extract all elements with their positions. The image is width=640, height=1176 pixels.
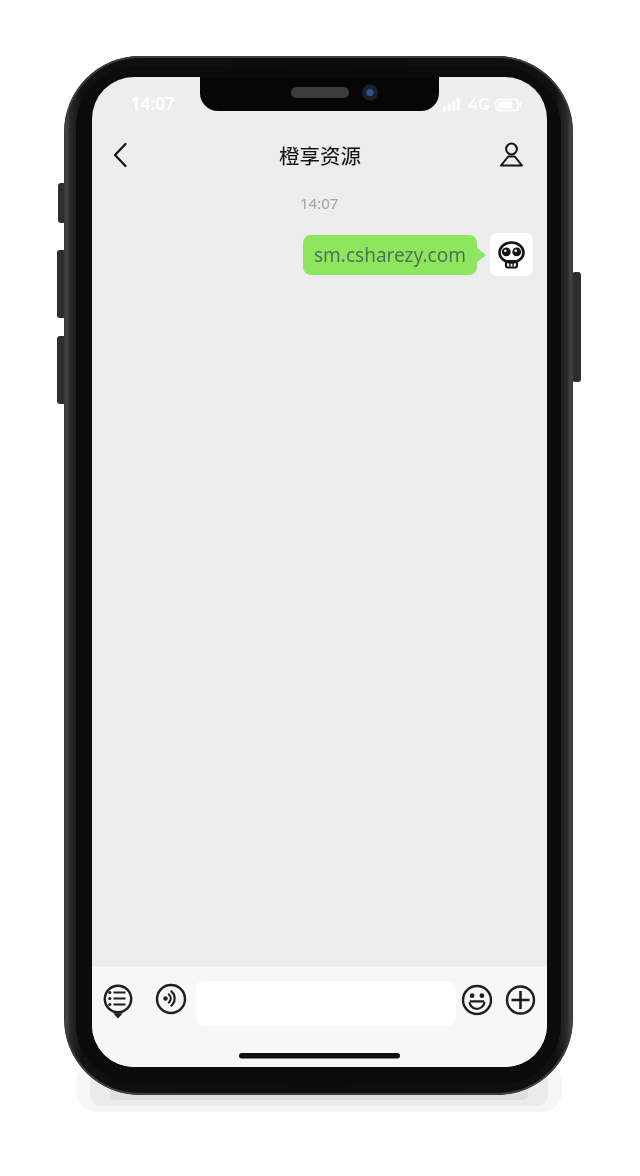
staticText: 橙享资源 xyxy=(279,140,361,170)
staticText: 14:07 xyxy=(131,92,175,115)
button[interactable] xyxy=(494,137,532,171)
button[interactable] xyxy=(503,983,539,1019)
button[interactable] xyxy=(152,984,188,1020)
button[interactable] xyxy=(106,139,136,171)
staticText: sm.csharezy.com xyxy=(314,242,466,268)
button[interactable] xyxy=(459,983,495,1019)
button[interactable] xyxy=(490,233,533,276)
button[interactable]: sm.csharezy.com xyxy=(303,235,477,275)
button[interactable] xyxy=(100,986,136,1030)
staticText: 14:07 xyxy=(300,193,339,213)
